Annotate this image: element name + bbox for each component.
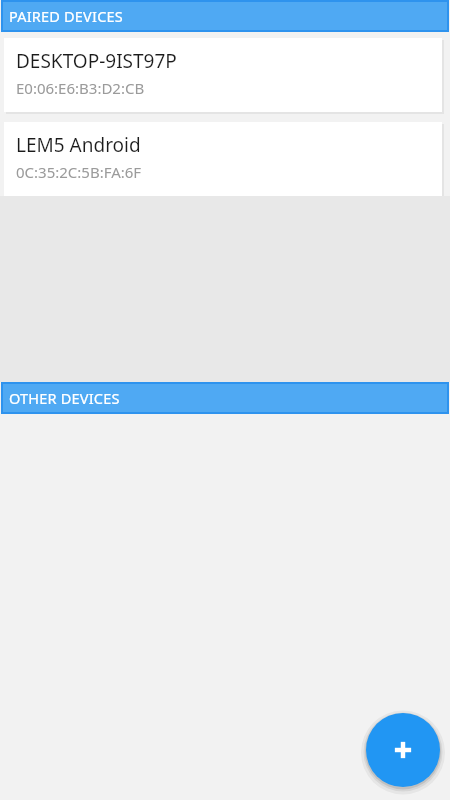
staticText: PAIRED DEVICES bbox=[9, 6, 123, 26]
button[interactable]: Add device bbox=[366, 713, 440, 787]
staticText: 0C:35:2C:5B:FA:6F bbox=[16, 162, 142, 182]
staticText: OTHER DEVICES bbox=[9, 388, 120, 408]
staticText: LEM5 Android bbox=[16, 132, 141, 158]
button[interactable]: DESKTOP-9IST97P bbox=[4, 38, 442, 112]
button[interactable]: LEM5 Android bbox=[4, 122, 442, 196]
staticText: E0:06:E6:B3:D2:CB bbox=[16, 78, 145, 98]
staticText: DESKTOP-9IST97P bbox=[16, 48, 177, 74]
button[interactable]: OTHER DEVICES bbox=[0, 382, 450, 414]
button[interactable]: PAIRED DEVICES bbox=[0, 0, 450, 32]
